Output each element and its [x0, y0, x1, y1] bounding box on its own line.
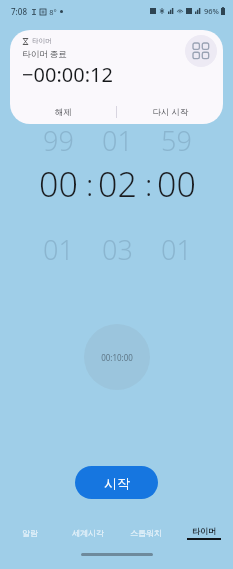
staticText: 00 — [39, 161, 78, 207]
staticText: 02 — [98, 161, 137, 207]
staticText: 해제 — [55, 107, 72, 118]
button[interactable]: App grid — [10, 30, 223, 124]
staticText: 8° — [49, 7, 57, 17]
button[interactable]: 해제 — [10, 100, 116, 124]
staticText: 01 — [161, 231, 192, 268]
button[interactable]: 00:10:00 — [84, 324, 150, 390]
staticText: −00:00:12 — [22, 61, 113, 88]
staticText: 알람 — [22, 528, 38, 538]
staticText: 03 — [102, 231, 133, 268]
staticText: 96% — [204, 6, 219, 16]
staticText: 다시 시작 — [152, 106, 189, 118]
button[interactable]: 세계시각 — [59, 520, 117, 546]
button[interactable]: 알람 — [0, 520, 59, 546]
staticText: 01 — [102, 122, 133, 159]
staticText: 타이머 종료 — [22, 48, 67, 60]
staticText: 타이머 — [32, 37, 52, 45]
staticText: 스톱워치 — [130, 528, 162, 538]
staticText: : — [145, 164, 148, 205]
button[interactable]: 타이머 — [175, 520, 233, 546]
button[interactable]: 다시 시작 — [117, 100, 223, 124]
staticText: 01 — [43, 231, 74, 268]
button[interactable]: 스톱워치 — [117, 520, 175, 546]
staticText: 7:08 — [11, 6, 27, 17]
button[interactable]: 시작 — [75, 466, 158, 499]
staticText: 시작 — [104, 475, 130, 491]
staticText: 00 — [157, 161, 196, 207]
staticText: : — [86, 164, 89, 205]
button[interactable]: App grid — [185, 35, 217, 67]
staticText: 59 — [161, 122, 192, 159]
staticText: 99 — [43, 122, 74, 159]
staticText: 타이머 — [192, 526, 216, 536]
staticText: 세계시각 — [72, 528, 104, 538]
staticText: 00:10:00 — [101, 352, 133, 363]
